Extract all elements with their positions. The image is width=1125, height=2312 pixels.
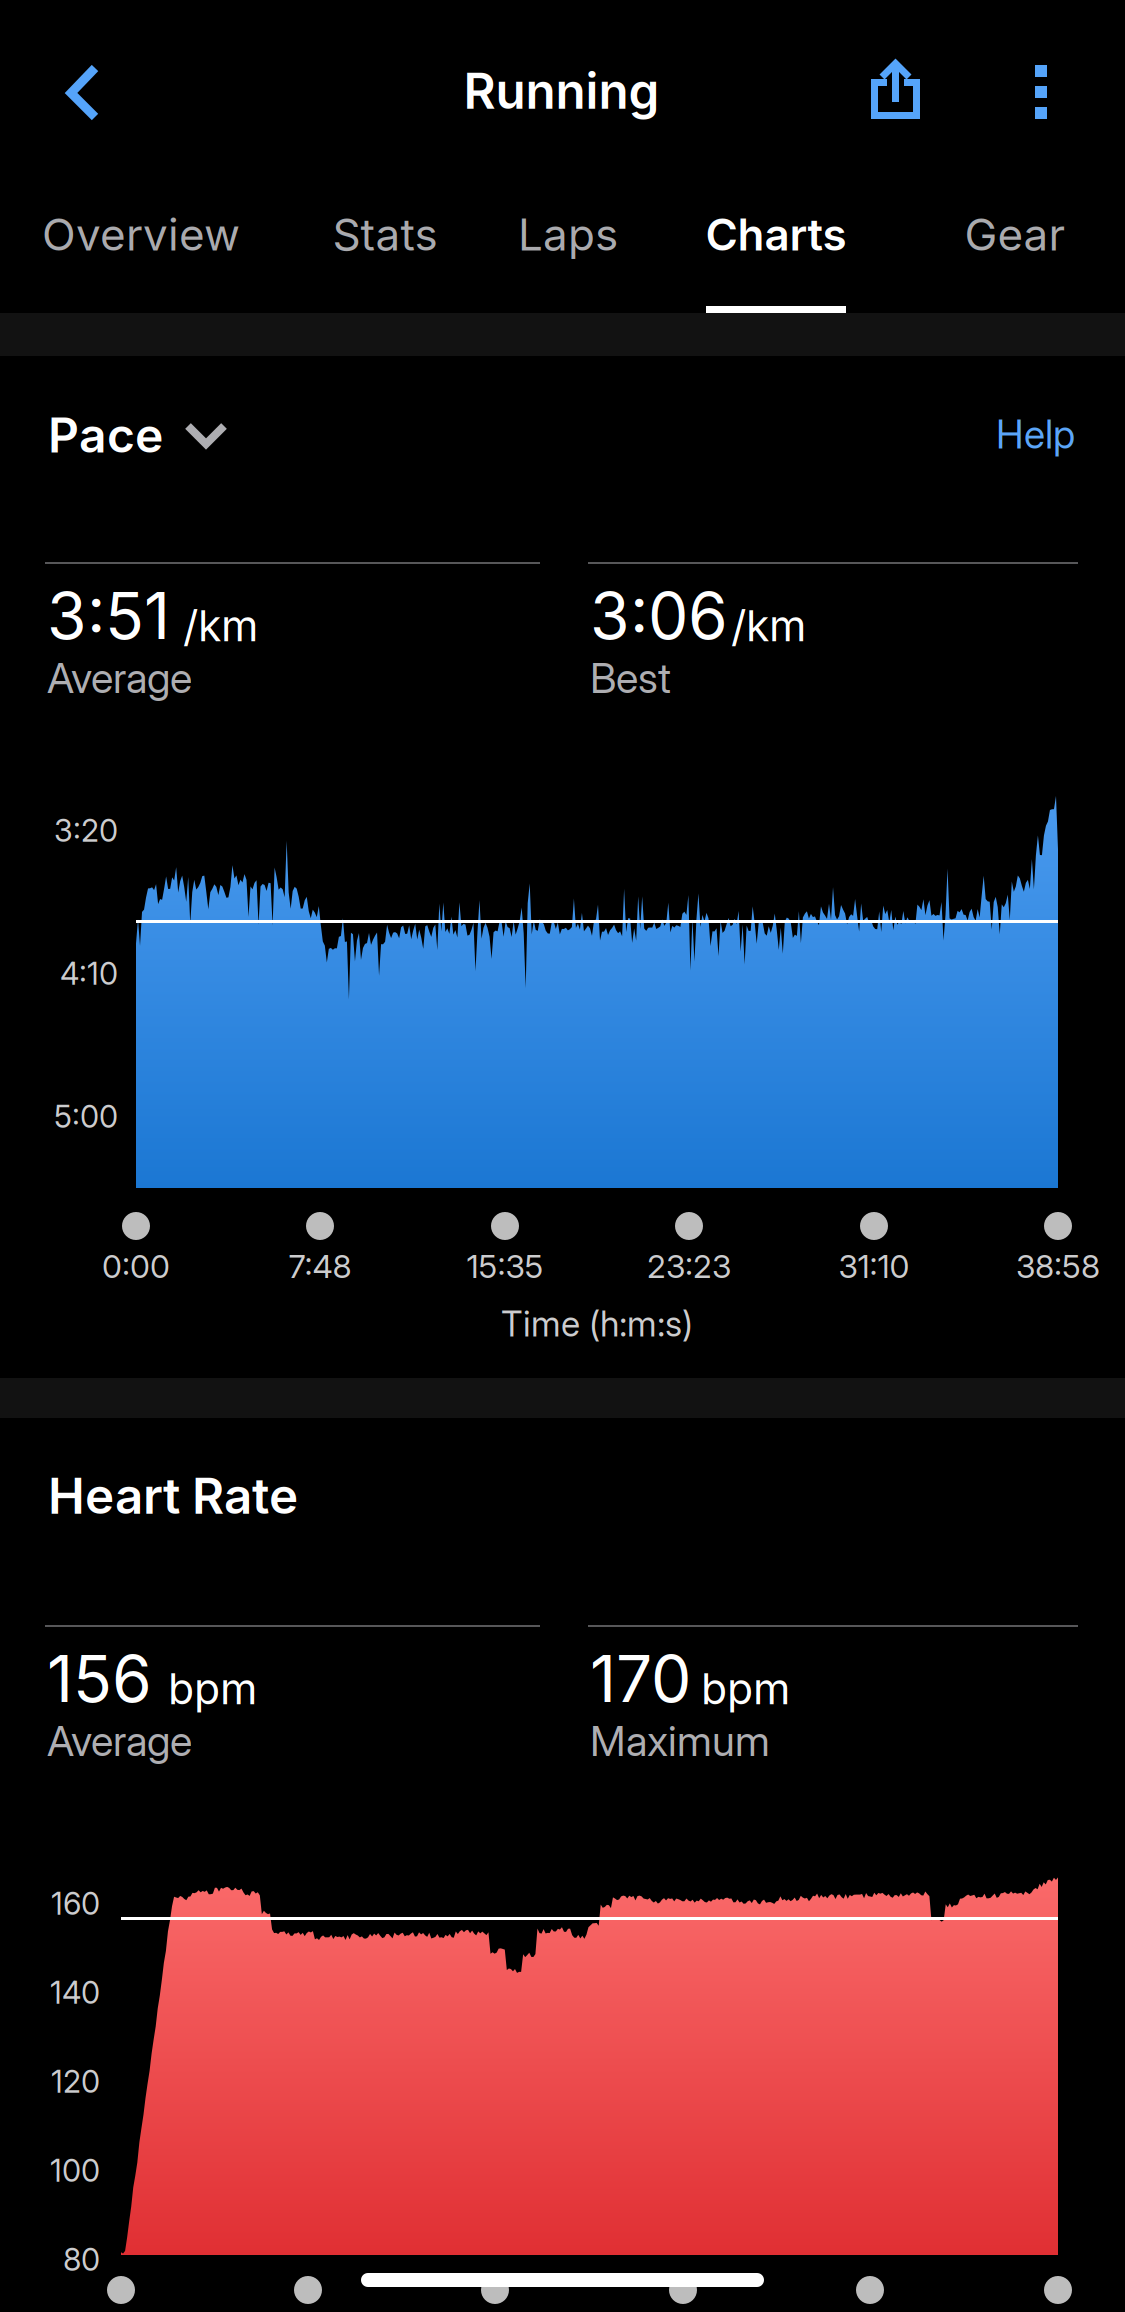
- staticText: 160: [51, 1885, 100, 1922]
- staticText: 31:10: [838, 1247, 909, 1286]
- staticText: 38:58: [1016, 1247, 1100, 1286]
- staticText: 156: [47, 1640, 152, 1717]
- staticText: Best: [590, 653, 671, 703]
- staticText: Heart Rate: [48, 1466, 298, 1526]
- staticText: Time (h:m:s): [501, 1303, 693, 1345]
- staticText: 4:10: [60, 955, 118, 992]
- staticText: 100: [50, 2152, 100, 2189]
- staticText: 80: [63, 2241, 100, 2278]
- staticText: Pace: [48, 406, 163, 464]
- staticText: Average: [47, 653, 192, 703]
- staticText: Gear: [964, 208, 1065, 261]
- button[interactable]: Pace: [36, 389, 266, 485]
- staticText: 140: [50, 1974, 100, 2011]
- staticText: 3:06: [590, 577, 728, 654]
- staticText: bpm: [168, 1663, 257, 1715]
- button[interactable]: Back: [15, 27, 135, 157]
- staticText: Overview: [42, 208, 240, 261]
- staticText: bpm: [701, 1663, 790, 1715]
- staticText: /km: [183, 600, 258, 652]
- button[interactable]: Stats: [300, 185, 470, 313]
- staticText: Help: [996, 411, 1075, 458]
- button[interactable]: More options: [985, 27, 1095, 157]
- staticText: Stats: [332, 208, 437, 261]
- staticText: /km: [731, 600, 806, 652]
- staticText: Laps: [518, 208, 618, 261]
- staticText: 7:48: [288, 1247, 351, 1286]
- button[interactable]: Help: [976, 389, 1112, 485]
- staticText: 170: [590, 1640, 691, 1717]
- staticText: 3:51: [47, 577, 170, 654]
- staticText: Maximum: [590, 1716, 770, 1766]
- button[interactable]: Laps: [485, 185, 651, 313]
- staticText: 5:00: [54, 1098, 118, 1135]
- button[interactable]: Overview: [30, 185, 252, 313]
- staticText: 15:35: [466, 1247, 543, 1286]
- staticText: Running: [463, 61, 659, 121]
- staticText: 0:00: [102, 1247, 170, 1286]
- button[interactable]: Gear: [930, 185, 1100, 313]
- staticText: 23:23: [647, 1247, 731, 1286]
- staticText: Charts: [705, 208, 846, 261]
- staticText: 120: [51, 2063, 100, 2100]
- button[interactable]: Share: [835, 27, 955, 157]
- staticText: Average: [47, 1716, 192, 1766]
- button[interactable]: Charts: [691, 185, 861, 313]
- staticText: 3:20: [54, 812, 118, 849]
